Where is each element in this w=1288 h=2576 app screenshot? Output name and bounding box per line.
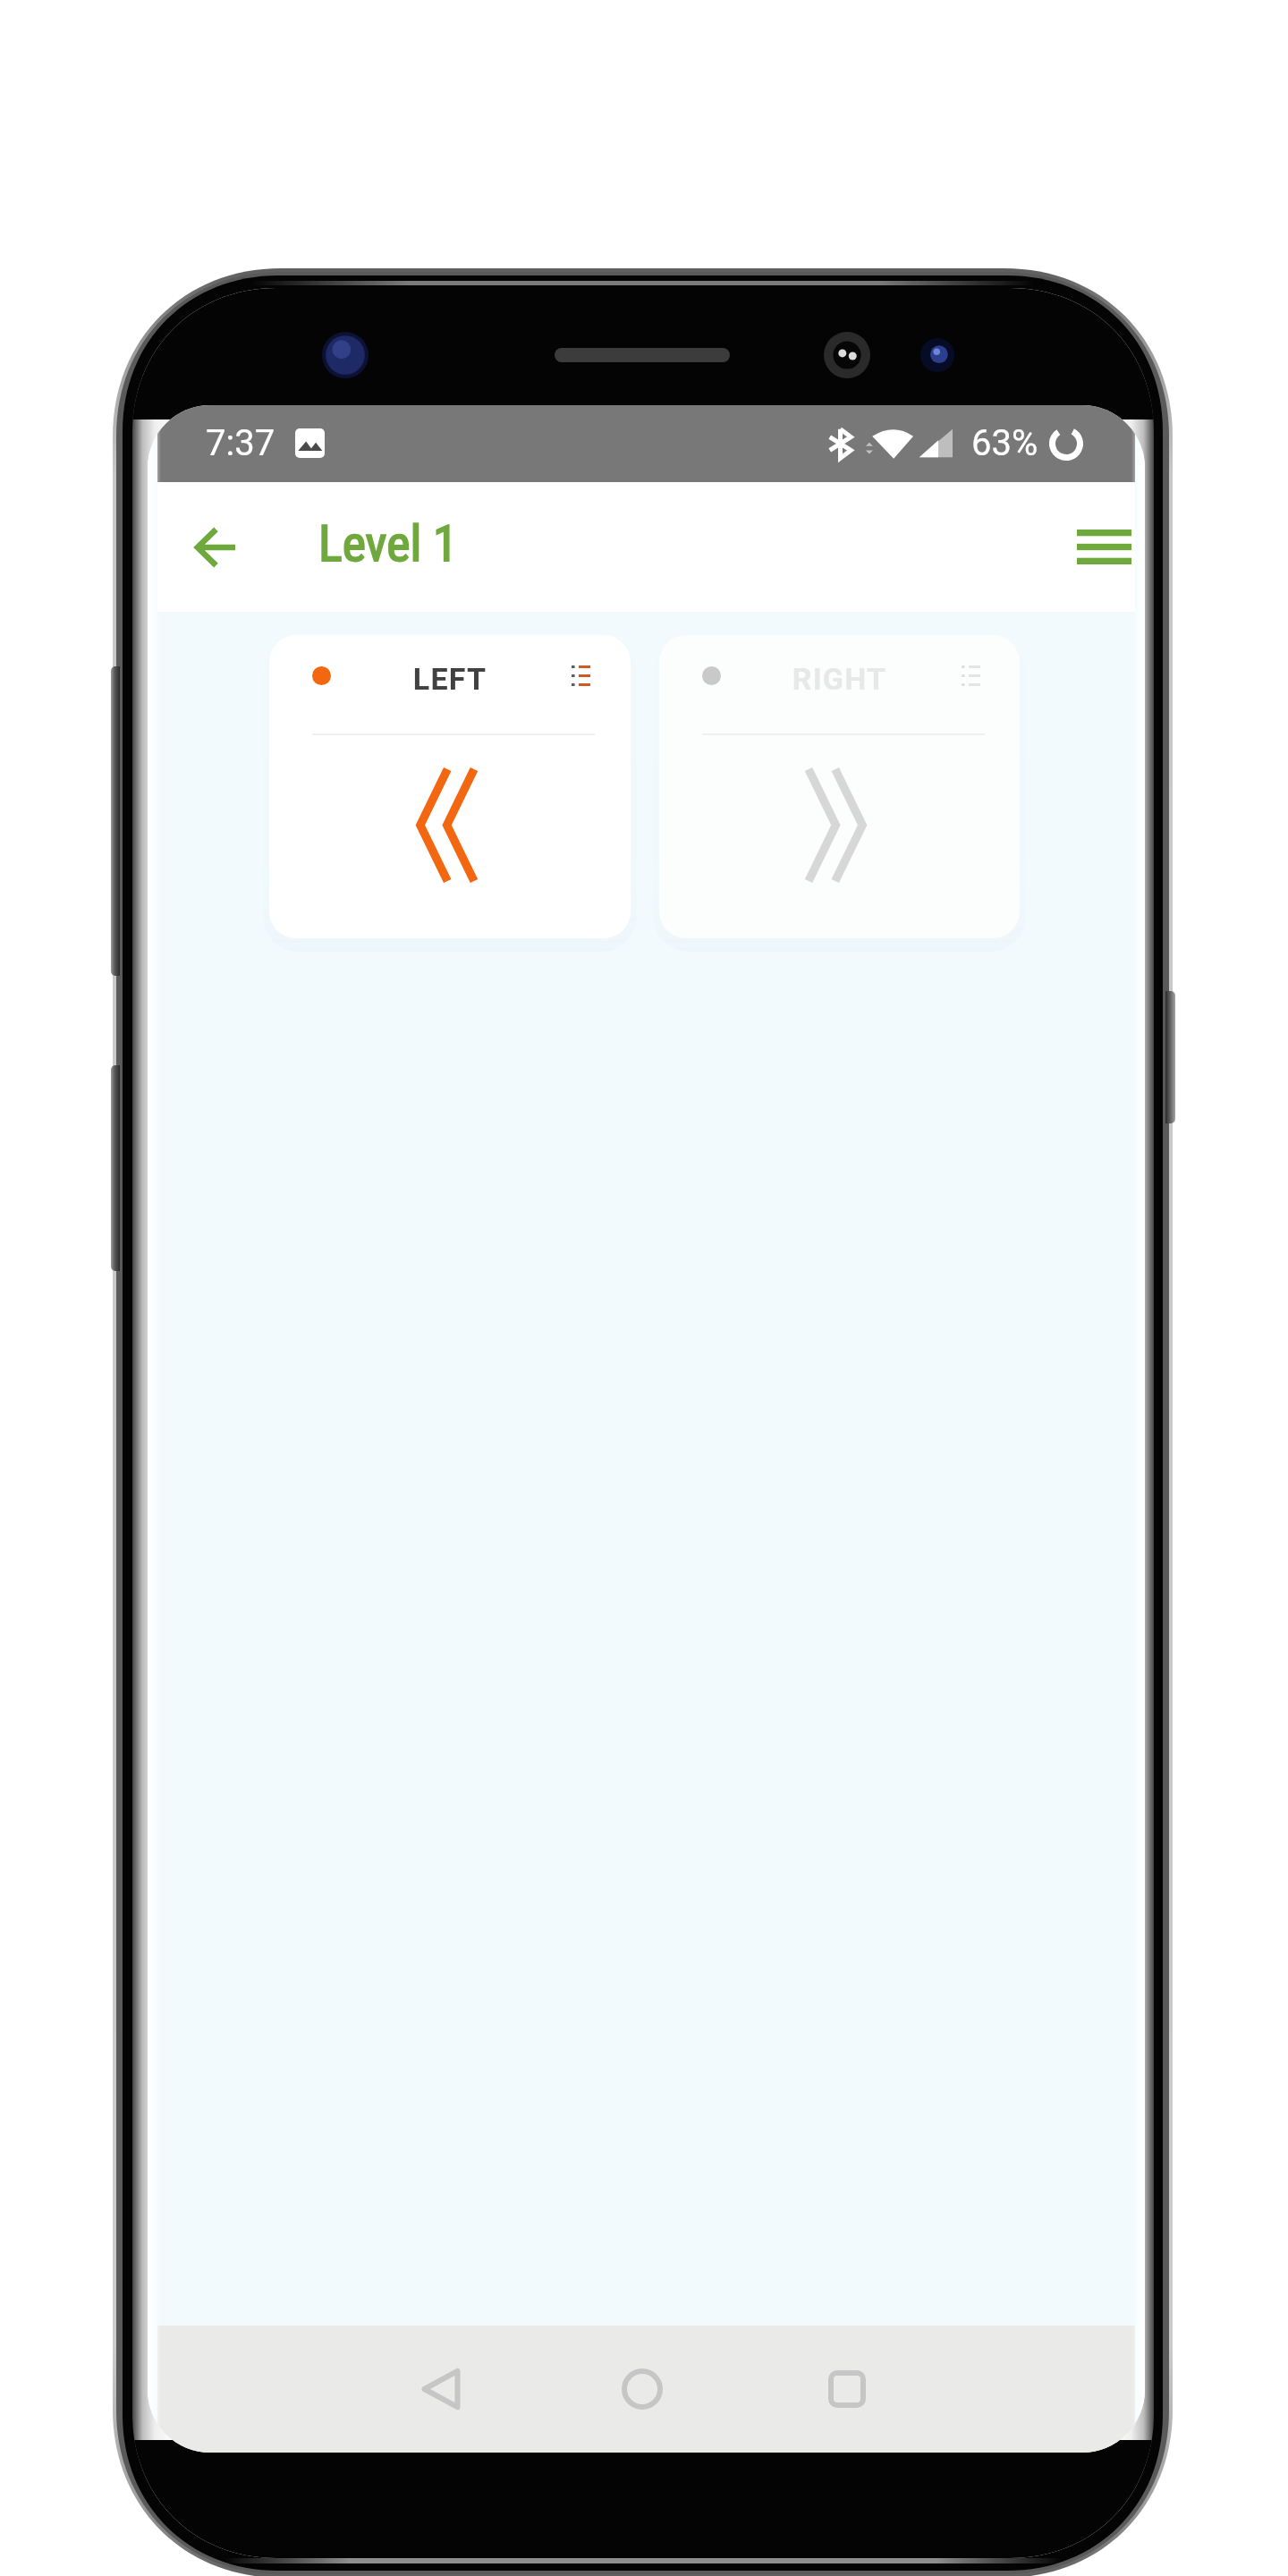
staticText: Level 1 (318, 514, 458, 573)
staticText: 63% (971, 422, 1038, 464)
button[interactable]: Navigate up (163, 500, 269, 594)
button[interactable]: Back (392, 2340, 490, 2438)
button[interactable]: LEFT (269, 635, 631, 938)
button[interactable]: Recent apps (798, 2340, 896, 2438)
button[interactable]: RIGHT (659, 635, 1020, 938)
button[interactable]: Show RIGHT list (938, 642, 1004, 709)
staticText: RIGHT (659, 661, 1020, 697)
button[interactable]: Show LEFT list (548, 642, 614, 709)
staticText: LEFT (269, 661, 631, 697)
button[interactable]: Home (593, 2340, 691, 2438)
button[interactable]: Menu (1047, 500, 1135, 594)
staticText: 7:37 (206, 422, 275, 464)
